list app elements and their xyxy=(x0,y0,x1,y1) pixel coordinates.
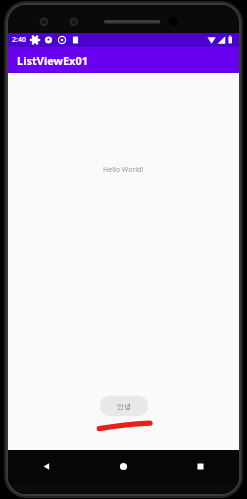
staticText: 안녕 xyxy=(117,402,131,411)
button[interactable]: Recent apps xyxy=(162,450,239,483)
button[interactable]: 안녕 xyxy=(100,396,148,416)
button[interactable]: Back xyxy=(8,450,85,483)
button[interactable]: Home xyxy=(85,450,162,483)
staticText: Hello World! xyxy=(103,165,144,175)
staticText: 2:40 xyxy=(12,35,26,45)
button[interactable]: ListViewEx01 xyxy=(8,47,239,73)
staticText: ListViewEx01 xyxy=(17,53,89,68)
